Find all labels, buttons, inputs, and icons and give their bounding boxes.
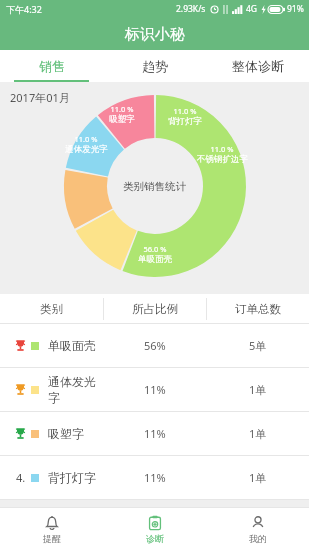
staticText: 下午4:32: [6, 3, 42, 15]
button[interactable]: 诊断: [103, 508, 206, 550]
staticText: 11.0 %: [210, 144, 234, 154]
button[interactable]: 通体发光字: [0, 368, 309, 412]
staticText: 我的: [249, 533, 267, 544]
button[interactable]: 整体诊断: [206, 50, 309, 82]
staticText: 提醒: [43, 533, 61, 544]
button[interactable]: 趋势: [103, 50, 206, 82]
staticText: 2017年01月: [10, 90, 70, 105]
staticText: 通体发光字: [48, 374, 103, 406]
staticText: 2.93K/s: [176, 3, 206, 15]
staticText: 背打灯字: [168, 116, 202, 127]
staticText: 1单: [249, 426, 267, 441]
staticText: 11%: [144, 426, 166, 441]
staticText: 11.0 %: [173, 106, 197, 116]
staticText: 标识小秘: [125, 25, 185, 44]
staticText: 1单: [249, 470, 267, 485]
staticText: 背打灯字: [48, 470, 96, 485]
staticText: 11%: [144, 470, 166, 485]
staticText: 1单: [249, 382, 267, 397]
staticText: 5单: [249, 338, 267, 353]
button[interactable]: 我的: [206, 508, 309, 550]
staticText: 通体发光字: [65, 144, 108, 155]
staticText: 诊断: [146, 533, 164, 544]
staticText: 11.0 %: [110, 104, 134, 114]
staticText: 56.0 %: [143, 244, 167, 254]
staticText: 单吸面壳: [48, 338, 96, 353]
staticText: 吸塑字: [109, 114, 135, 125]
staticText: 4G: [246, 3, 258, 15]
button[interactable]: 提醒: [0, 508, 103, 550]
staticText: 整体诊断: [232, 58, 284, 74]
button[interactable]: 销售: [0, 50, 103, 82]
button[interactable]: 单吸面壳: [0, 324, 309, 368]
staticText: 订单总数: [235, 302, 281, 316]
staticText: 不锈钢扩边字: [197, 154, 248, 165]
staticText: 吸塑字: [48, 426, 84, 441]
button[interactable]: 4.: [0, 456, 309, 500]
staticText: 11.0 %: [74, 134, 98, 144]
staticText: 类别: [40, 302, 63, 316]
staticText: 所占比例: [132, 302, 178, 316]
staticText: 91%: [287, 3, 304, 15]
staticText: 11%: [144, 382, 166, 397]
staticText: 单吸面壳: [138, 254, 172, 265]
staticText: 趋势: [142, 58, 168, 74]
staticText: 56%: [144, 338, 166, 353]
staticText: 类别销售统计: [123, 180, 186, 193]
button[interactable]: 吸塑字: [0, 412, 309, 456]
staticText: 4.: [16, 470, 26, 485]
staticText: 销售: [39, 58, 65, 74]
